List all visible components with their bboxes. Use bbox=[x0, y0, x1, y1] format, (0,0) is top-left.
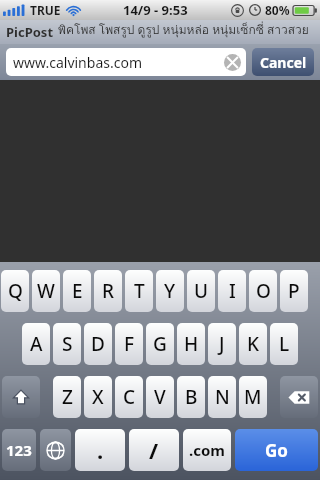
button[interactable]: www.calvinbas.com bbox=[6, 48, 246, 76]
staticText: C bbox=[123, 384, 136, 410]
button[interactable]: Y bbox=[156, 270, 184, 312]
button[interactable]: Change language bbox=[40, 429, 71, 471]
staticText: PicPost bbox=[6, 23, 54, 41]
button[interactable]: H bbox=[177, 323, 205, 365]
button[interactable]: S bbox=[53, 323, 81, 365]
staticText: P bbox=[288, 278, 300, 304]
staticText: H bbox=[184, 331, 199, 357]
button[interactable]: E bbox=[63, 270, 91, 312]
staticText: .com bbox=[189, 440, 225, 460]
staticText: Cancel bbox=[260, 53, 307, 72]
button[interactable]: I bbox=[218, 270, 246, 312]
staticText: K bbox=[247, 331, 260, 357]
staticText: J bbox=[219, 331, 225, 357]
staticText: พิคโพส โพสรูป ดูรูป หนุ่มหล่อ หนุ่มเซ็กซ… bbox=[58, 20, 320, 44]
button[interactable]: G bbox=[146, 323, 174, 365]
button[interactable]: B bbox=[177, 376, 205, 418]
button[interactable]: Z bbox=[53, 376, 81, 418]
button[interactable]: X bbox=[84, 376, 112, 418]
button[interactable]: Clear text bbox=[224, 54, 241, 71]
button[interactable]: . bbox=[75, 429, 125, 471]
button[interactable]: / bbox=[129, 429, 179, 471]
button[interactable]: O bbox=[249, 270, 277, 312]
button[interactable]: W bbox=[32, 270, 60, 312]
staticText: 14/9 - 9:53 bbox=[123, 1, 188, 19]
staticText: F bbox=[124, 331, 135, 357]
button[interactable]: P bbox=[280, 270, 308, 312]
staticText: M bbox=[244, 384, 262, 410]
staticText: V bbox=[154, 384, 166, 410]
button[interactable]: Numbers bbox=[2, 429, 36, 471]
staticText: www.calvinbas.com bbox=[13, 53, 142, 72]
button[interactable]: C bbox=[115, 376, 143, 418]
staticText: TRUE bbox=[30, 2, 61, 18]
staticText: I bbox=[229, 278, 236, 304]
button[interactable]: U bbox=[187, 270, 215, 312]
staticText: R bbox=[102, 278, 115, 304]
staticText: Go bbox=[265, 439, 288, 462]
staticText: Z bbox=[62, 384, 73, 410]
staticText: S bbox=[62, 331, 73, 357]
button[interactable]: Q bbox=[1, 270, 29, 312]
staticText: N bbox=[215, 384, 230, 410]
staticText: . bbox=[97, 435, 104, 465]
staticText: U bbox=[194, 278, 209, 304]
button[interactable]: K bbox=[239, 323, 267, 365]
button[interactable]: L bbox=[270, 323, 298, 365]
button[interactable]: Delete bbox=[280, 376, 318, 418]
staticText: 80% bbox=[265, 2, 290, 18]
button[interactable]: R bbox=[94, 270, 122, 312]
staticText: Y bbox=[164, 278, 176, 304]
staticText: X bbox=[92, 384, 104, 410]
button[interactable]: T bbox=[125, 270, 153, 312]
button[interactable]: Go bbox=[235, 429, 318, 471]
button[interactable]: D bbox=[84, 323, 112, 365]
staticText: B bbox=[185, 384, 198, 410]
button[interactable]: .com bbox=[183, 429, 231, 471]
staticText: W bbox=[37, 278, 55, 304]
staticText: 123 bbox=[6, 440, 32, 460]
staticText: L bbox=[279, 331, 290, 357]
button[interactable]: Shift bbox=[2, 376, 40, 418]
staticText: / bbox=[149, 435, 159, 465]
staticText: A bbox=[30, 331, 43, 357]
staticText: T bbox=[134, 278, 145, 304]
button[interactable]: J bbox=[208, 323, 236, 365]
staticText: Q bbox=[8, 278, 23, 304]
staticText: O bbox=[256, 278, 271, 304]
button[interactable]: F bbox=[115, 323, 143, 365]
button[interactable]: N bbox=[208, 376, 236, 418]
button[interactable]: V bbox=[146, 376, 174, 418]
staticText: D bbox=[91, 331, 105, 357]
button[interactable]: A bbox=[22, 323, 50, 365]
button[interactable]: M bbox=[239, 376, 267, 418]
staticText: E bbox=[72, 278, 83, 304]
button[interactable]: Cancel bbox=[252, 48, 314, 76]
staticText: G bbox=[153, 331, 167, 357]
